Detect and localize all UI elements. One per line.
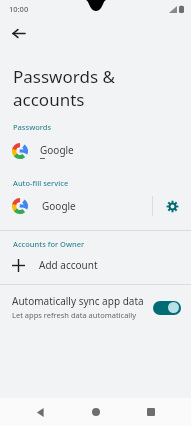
button[interactable]: Back bbox=[5, 20, 31, 46]
staticText: Passwords bbox=[13, 122, 52, 132]
button[interactable]: Automatically sync app data bbox=[0, 285, 191, 329]
button[interactable]: Google bbox=[0, 190, 152, 222]
staticText: Google bbox=[42, 199, 76, 213]
button[interactable]: Google bbox=[0, 134, 191, 168]
staticText: Google bbox=[40, 143, 74, 157]
staticText: accounts bbox=[13, 88, 85, 111]
staticText: Passwords & bbox=[13, 65, 115, 88]
staticText: Let apps refresh data automatically bbox=[12, 310, 137, 320]
staticText: 10:00 bbox=[9, 4, 29, 14]
button[interactable]: Home bbox=[81, 398, 111, 426]
button[interactable]: Autofill settings bbox=[153, 190, 191, 222]
button[interactable]: Automatically sync app data toggle bbox=[153, 300, 181, 315]
staticText: Add account bbox=[39, 258, 98, 272]
staticText: Automatically sync app data bbox=[12, 294, 144, 308]
button[interactable]: Recent apps bbox=[136, 398, 166, 426]
staticText: Accounts for Owner bbox=[13, 239, 85, 249]
button[interactable]: Add account bbox=[0, 251, 191, 279]
button[interactable]: Back bbox=[25, 398, 55, 426]
staticText: Auto-fill service bbox=[13, 178, 69, 188]
